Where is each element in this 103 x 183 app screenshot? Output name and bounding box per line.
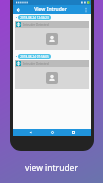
staticText: 2018-08-24 07:58:05	[20, 55, 49, 59]
other: Intruder photo	[46, 33, 58, 45]
button[interactable]: 2018-08-24 12:04:23	[20, 15, 49, 20]
staticText: Intruder Detected	[23, 62, 49, 66]
staticText: 2018-08-24 12:04:23	[20, 16, 49, 20]
button[interactable]: More options	[82, 6, 90, 14]
button[interactable]: Intruder Detected	[15, 21, 89, 50]
button[interactable]: Back	[27, 129, 34, 136]
button[interactable]: Back	[14, 6, 22, 14]
button[interactable]: Home	[49, 129, 56, 136]
staticText: Intruder Detected	[23, 23, 49, 27]
staticText: view intruder	[0, 162, 103, 174]
button[interactable]: Intruder Detected	[15, 60, 89, 89]
button[interactable]: 2018-08-24 07:58:05	[20, 54, 49, 59]
button[interactable]: View Intruder	[34, 6, 67, 13]
button[interactable]: Recents	[70, 129, 77, 136]
other: Intruder photo	[46, 72, 58, 84]
